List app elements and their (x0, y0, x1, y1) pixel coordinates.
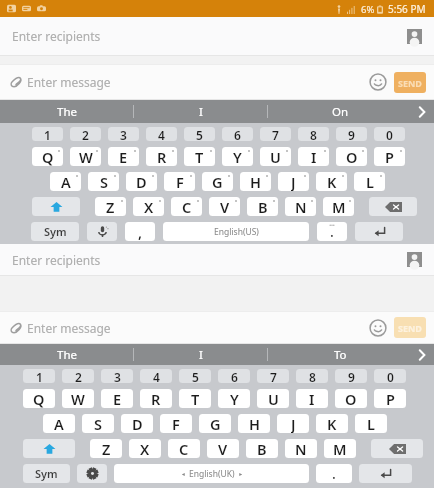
button[interactable]: Sym (31, 222, 79, 241)
button[interactable]: 7 (257, 369, 289, 383)
button[interactable]: H (238, 414, 270, 433)
button[interactable]: Backspace (369, 197, 417, 216)
button[interactable]: N (285, 439, 317, 458)
button[interactable]: R (146, 147, 177, 166)
button[interactable]: 4 (146, 127, 177, 141)
button[interactable]: I (296, 389, 328, 408)
button[interactable]: 2 (62, 369, 94, 383)
button[interactable]: V (209, 197, 240, 216)
button[interactable]: S (88, 172, 119, 191)
button[interactable]: Enter (359, 464, 412, 483)
button[interactable]: M (323, 197, 354, 216)
button[interactable]: On (268, 100, 434, 123)
button[interactable]: N (285, 197, 316, 216)
button[interactable]: Shift (23, 439, 75, 458)
button[interactable]: X (129, 439, 161, 458)
button[interactable]: . (316, 464, 352, 483)
button[interactable]: More suggestions (410, 100, 434, 123)
button[interactable]: 3 (101, 369, 133, 383)
button[interactable]: English(UK) (114, 464, 309, 483)
button[interactable]: English(US) (163, 222, 309, 241)
button[interactable]: L (355, 414, 387, 433)
button[interactable]: Z (95, 197, 126, 216)
button[interactable]: D (126, 172, 157, 191)
button[interactable]: 6 (218, 369, 250, 383)
button[interactable]: W (70, 147, 101, 166)
button[interactable]: Enter recipients (0, 244, 434, 275)
button[interactable]: Add contact (407, 29, 422, 44)
button[interactable]: H (240, 172, 271, 191)
button[interactable]: A (43, 414, 75, 433)
button[interactable]: Q (23, 389, 55, 408)
button[interactable]: G (199, 414, 231, 433)
button[interactable]: Add contact (407, 252, 422, 267)
button[interactable]: Keyboard settings (77, 464, 107, 483)
button[interactable]: Voice input (87, 222, 117, 241)
button[interactable]: Backspace (371, 439, 423, 458)
button[interactable]: 4 (140, 369, 172, 383)
button[interactable]: F (160, 414, 192, 433)
button[interactable]: 9 (336, 127, 367, 141)
button[interactable]: B (246, 439, 278, 458)
button[interactable]: T (179, 389, 211, 408)
button[interactable]: I (134, 344, 267, 365)
button[interactable]: P (374, 389, 406, 408)
button[interactable]: Y (218, 389, 250, 408)
button[interactable]: The (0, 100, 133, 123)
button[interactable]: Attach (8, 74, 24, 90)
button[interactable]: R (140, 389, 172, 408)
button[interactable]: U (257, 389, 289, 408)
button[interactable]: T (184, 147, 215, 166)
button[interactable]: G (202, 172, 233, 191)
button[interactable]: 5 (184, 127, 215, 141)
button[interactable]: J (277, 414, 309, 433)
button[interactable]: 1 (23, 369, 55, 383)
button[interactable]: X (133, 197, 164, 216)
button[interactable]: O (335, 389, 367, 408)
button[interactable]: D (121, 414, 153, 433)
button[interactable]: C (171, 197, 202, 216)
button[interactable]: 0 (374, 369, 406, 383)
button[interactable]: B (247, 197, 278, 216)
button[interactable]: 3 (108, 127, 139, 141)
button[interactable]: 5 (179, 369, 211, 383)
button[interactable]: I (134, 100, 267, 123)
button[interactable]: 2 (70, 127, 101, 141)
button[interactable]: L (354, 172, 385, 191)
button[interactable]: 1 (32, 127, 63, 141)
button[interactable]: , (125, 222, 155, 241)
button[interactable]: . (317, 222, 347, 241)
button[interactable]: E (101, 389, 133, 408)
button[interactable]: W (62, 389, 94, 408)
button[interactable]: J (278, 172, 309, 191)
button[interactable]: Sym (23, 464, 70, 483)
button[interactable]: Z (90, 439, 122, 458)
button[interactable]: K (316, 172, 347, 191)
button[interactable]: Shift (32, 197, 80, 216)
button[interactable]: K (316, 414, 348, 433)
button[interactable]: 6 (222, 127, 253, 141)
button[interactable]: To (268, 344, 434, 365)
button[interactable]: Emoji (369, 73, 387, 91)
button[interactable]: 8 (298, 127, 329, 141)
button[interactable]: Attach (8, 320, 24, 336)
button[interactable]: The (0, 344, 133, 365)
button[interactable]: More suggestions (410, 344, 434, 365)
button[interactable]: 7 (260, 127, 291, 141)
button[interactable]: M (324, 439, 356, 458)
button[interactable]: C (168, 439, 200, 458)
button[interactable]: 0 (374, 127, 405, 141)
button[interactable]: Emoji (369, 319, 387, 337)
button[interactable]: S (82, 414, 114, 433)
button[interactable]: U (260, 147, 291, 166)
button[interactable]: V (207, 439, 239, 458)
button[interactable]: Y (222, 147, 253, 166)
button[interactable]: SEND (394, 317, 426, 338)
button[interactable]: P (374, 147, 405, 166)
button[interactable]: A (50, 172, 81, 191)
button[interactable]: 9 (335, 369, 367, 383)
button[interactable]: F (164, 172, 195, 191)
button[interactable]: Enter recipients (0, 17, 434, 55)
button[interactable]: Enter (355, 222, 403, 241)
button[interactable]: O (336, 147, 367, 166)
